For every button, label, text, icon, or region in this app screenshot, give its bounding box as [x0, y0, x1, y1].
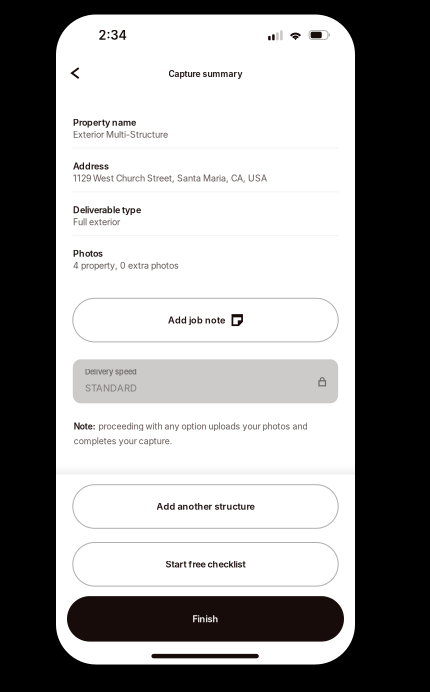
- button[interactable]: Back: [70, 67, 80, 79]
- staticText: Capture summary: [168, 69, 242, 79]
- button[interactable]: Add job note: [73, 298, 338, 342]
- staticText: STANDARD: [85, 382, 137, 394]
- staticText: 4 property, 0 extra photos: [73, 260, 179, 271]
- staticText: Full exterior: [73, 217, 120, 227]
- staticText: Address: [73, 161, 109, 172]
- staticText: Photos: [73, 248, 103, 259]
- staticText: Finish: [192, 613, 218, 624]
- staticText: Delivery speed: [85, 367, 137, 376]
- staticText: Add another structure: [156, 501, 254, 512]
- staticText: completes your capture.: [74, 436, 172, 446]
- staticText: 2:34: [98, 28, 126, 43]
- staticText: Deliverable type: [73, 204, 141, 215]
- staticText: Note:: [74, 421, 96, 431]
- staticText: Property name: [73, 117, 136, 128]
- button[interactable]: Start free checklist: [73, 542, 338, 586]
- staticText: 1129 West Church Street, Santa Maria, CA…: [73, 173, 267, 184]
- staticText: Exterior Multi-Structure: [73, 129, 168, 140]
- button[interactable]: Add another structure: [73, 485, 338, 528]
- button[interactable]: Finish: [67, 596, 344, 642]
- staticText: proceeding with any option uploads your …: [98, 421, 307, 431]
- staticText: Start free checklist: [165, 559, 245, 570]
- staticText: Add job note: [168, 315, 225, 326]
